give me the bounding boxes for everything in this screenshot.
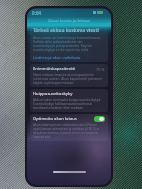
staticText: Huippusuorituskyky: [33, 91, 73, 97]
staticText: Tämä mittaus ilmaisee akun kapasiteetin …: [33, 73, 105, 85]
button[interactable]: Enimmäiskapasiteetti: [30, 64, 108, 87]
staticText: Tärkeä akkua koskeva viesti: [33, 27, 99, 33]
staticText: Enimmäiskapasiteetti: [33, 66, 76, 72]
staticText: Lisätietoja akun vaihdosta: [33, 55, 81, 60]
button[interactable]: Huippusuorituskyky: [30, 89, 108, 112]
other: Signal: [93, 11, 96, 14]
staticText: 75 %: [96, 67, 105, 72]
other: Battery: [97, 11, 103, 14]
button[interactable]: Optimoitu akun lataus: [94, 116, 105, 122]
button[interactable]: Lisätietoja akun vaihdosta: [33, 55, 81, 60]
staticText: Optimoitu akun lataus: [33, 116, 77, 122]
button[interactable]: Akun kunto ja lataus: [27, 17, 111, 25]
staticText: Akun kunto ja lataus: [48, 18, 91, 24]
button[interactable]: Optimoitu akun lataus: [30, 114, 108, 141]
staticText: Akkusi tukee normaalia huippusuorituskyk…: [33, 98, 105, 110]
staticText: 0:04: [32, 10, 42, 16]
staticText: Akun ikääntymisen vähentämiseksi iPhone …: [33, 123, 105, 139]
staticText: Akun kunto on heikentynyt huomattavasti.…: [33, 35, 105, 52]
button[interactable]: Tärkeä akkua koskeva viesti: [30, 25, 108, 62]
